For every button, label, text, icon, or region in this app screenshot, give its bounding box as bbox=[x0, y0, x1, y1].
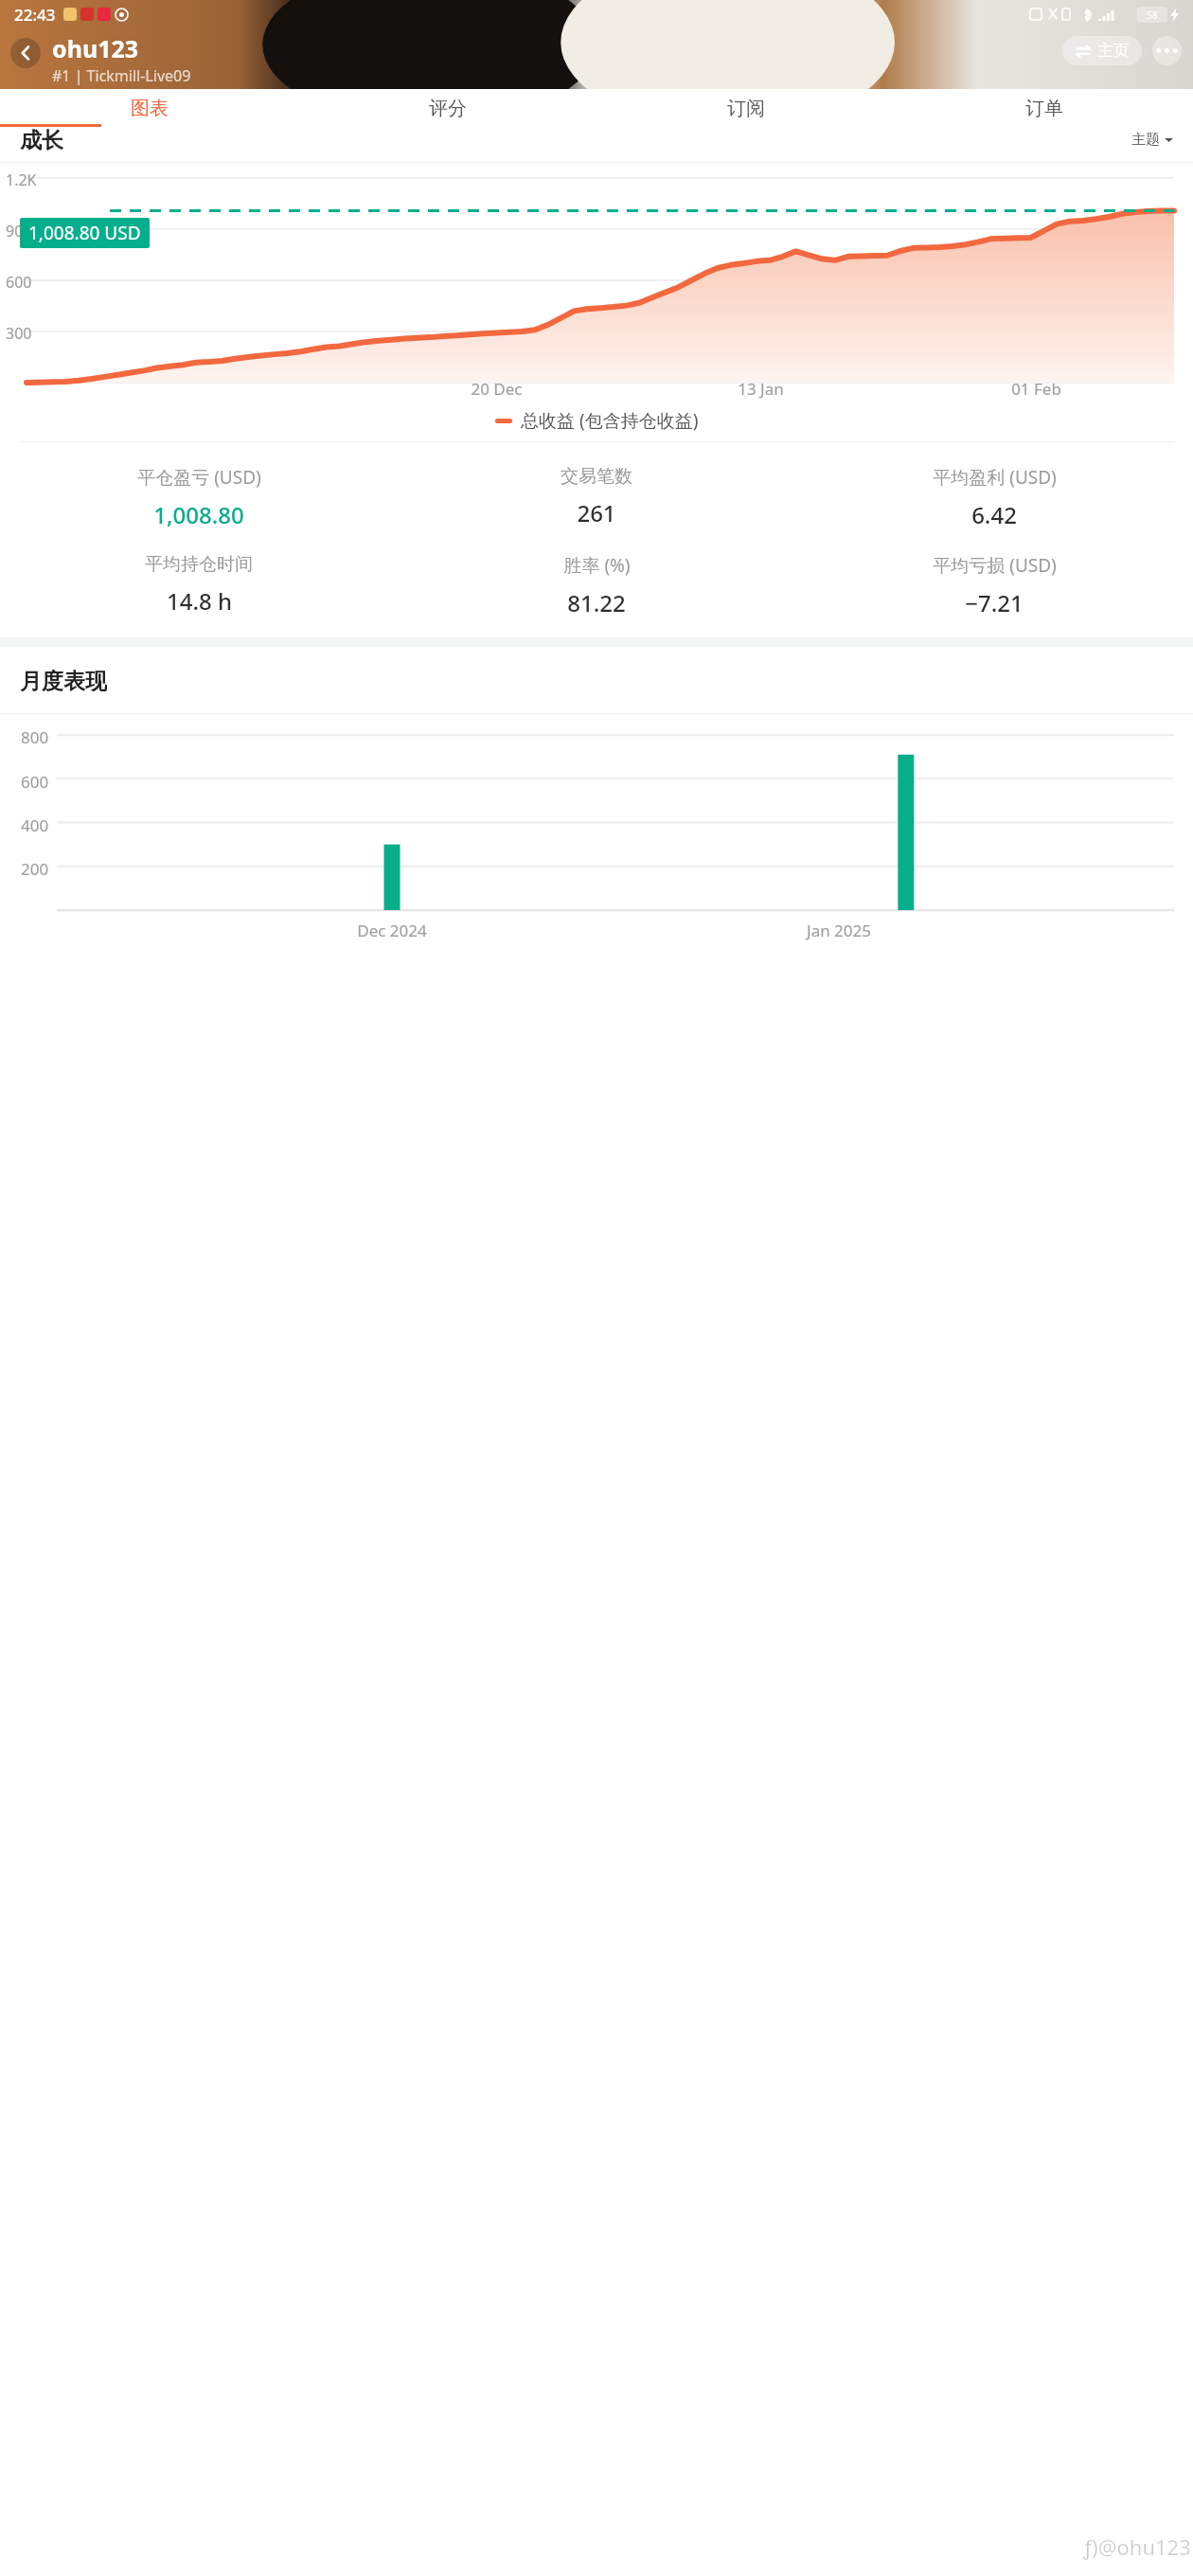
staticText: 261 bbox=[577, 497, 616, 528]
button[interactable]: 订阅 bbox=[596, 89, 895, 127]
staticText: Dec 2024 bbox=[236, 920, 548, 941]
staticText: 300 bbox=[6, 323, 32, 344]
staticText: 图表 bbox=[131, 97, 169, 120]
staticText: Jan 2025 bbox=[683, 920, 995, 941]
button[interactable]: 图表 bbox=[0, 89, 298, 127]
staticText: 200 bbox=[21, 858, 49, 880]
staticText: 平均亏损 (USD) bbox=[933, 553, 1057, 578]
staticText: 主页 bbox=[1097, 41, 1130, 61]
staticText: 胜率 (%) bbox=[563, 553, 631, 578]
staticText: 14.8 h bbox=[167, 585, 232, 617]
staticText: 900 bbox=[6, 221, 32, 241]
staticText: 22:43 bbox=[14, 4, 56, 26]
button[interactable]: 订单 bbox=[895, 89, 1193, 127]
staticText: 58 bbox=[1147, 9, 1158, 22]
staticText: 订单 bbox=[1025, 97, 1063, 120]
button[interactable]: 主页 bbox=[1062, 36, 1142, 65]
staticText: 订阅 bbox=[727, 97, 765, 120]
staticText: 1.2K bbox=[6, 170, 37, 190]
staticText: 平均盈利 (USD) bbox=[933, 465, 1057, 490]
staticText: ohu123 bbox=[52, 32, 139, 64]
staticText: 评分 bbox=[429, 97, 467, 120]
staticText: 13 Jan bbox=[623, 378, 899, 400]
staticText: 1,008.80 USD bbox=[28, 221, 141, 245]
staticText: 平均持仓时间 bbox=[145, 553, 253, 576]
staticText: 成长 bbox=[20, 127, 63, 152]
staticText: 400 bbox=[21, 814, 49, 836]
staticText: 1,008.80 bbox=[153, 499, 244, 530]
button[interactable]: More options bbox=[1152, 36, 1182, 65]
staticText: 20 Dec bbox=[370, 378, 623, 400]
staticText: 01 Feb bbox=[899, 378, 1174, 400]
button[interactable]: 评分 bbox=[298, 89, 596, 127]
staticText: 月度表现 bbox=[20, 668, 107, 692]
staticText: 主题 bbox=[1131, 131, 1160, 149]
staticText: 600 bbox=[6, 272, 32, 293]
staticText: ƒ)@ohu123 bbox=[1083, 2532, 1191, 2561]
staticText: 600 bbox=[21, 771, 49, 793]
button[interactable]: 主题 bbox=[1131, 131, 1173, 149]
staticText: 81.22 bbox=[567, 587, 626, 618]
staticText: −7.21 bbox=[965, 587, 1024, 618]
button[interactable]: Back bbox=[10, 38, 41, 68]
staticText: 总收益 (包含持仓收益) bbox=[521, 408, 699, 433]
staticText: 交易笔数 bbox=[561, 465, 632, 488]
staticText: #1 | Tickmill-Live09 bbox=[52, 65, 191, 86]
staticText: 6.42 bbox=[971, 499, 1017, 530]
staticText: 800 bbox=[21, 726, 49, 748]
staticText: 平仓盈亏 (USD) bbox=[137, 465, 261, 490]
